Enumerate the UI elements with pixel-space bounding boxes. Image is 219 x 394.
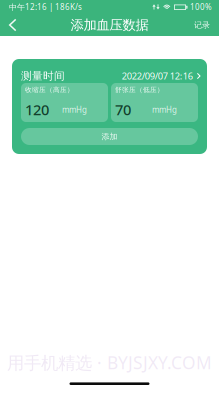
staticText: 用手机精选 · BYJSJXY.COM	[7, 351, 212, 374]
staticText: 测量时间	[21, 69, 65, 82]
staticText: 收缩压（高压）	[25, 86, 74, 94]
button[interactable]: Back	[0, 14, 26, 36]
staticText: mmHg	[62, 104, 87, 115]
staticText: 添加血压数据	[70, 17, 148, 33]
button[interactable]: 添加	[21, 128, 198, 145]
staticText: 中午12:16 | 186K/s	[9, 2, 82, 12]
staticText: 2022/09/07 12:16	[122, 70, 193, 82]
staticText: mmHg	[152, 104, 177, 115]
staticText: 记录	[194, 20, 210, 30]
button[interactable]: 测量时间	[21, 70, 198, 82]
staticText: 舒张压（低压）	[115, 86, 164, 94]
button[interactable]: 记录	[188, 14, 219, 36]
staticText: 120	[25, 100, 49, 119]
staticText: 70	[115, 100, 131, 119]
staticText: 100%	[190, 2, 212, 12]
staticText: 添加	[101, 132, 117, 141]
